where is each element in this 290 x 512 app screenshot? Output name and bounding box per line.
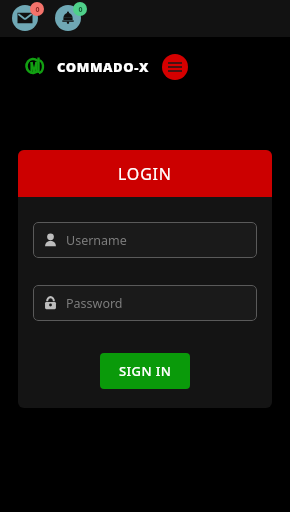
button[interactable]: SIGN IN xyxy=(100,353,190,389)
button[interactable]: Notifications xyxy=(55,2,88,35)
staticText: Password xyxy=(66,295,123,312)
staticText: COMMADO-X xyxy=(57,58,149,76)
staticText: 0 xyxy=(78,5,83,15)
staticText: 0 xyxy=(35,5,40,15)
button[interactable]: Menu xyxy=(162,54,188,80)
staticText: Username xyxy=(66,232,127,249)
button[interactable]: Messages xyxy=(12,2,45,35)
button[interactable]: Password xyxy=(33,285,257,321)
button[interactable]: Username xyxy=(33,222,257,258)
staticText: SIGN IN xyxy=(119,362,172,380)
staticText: LOGIN xyxy=(118,163,172,185)
